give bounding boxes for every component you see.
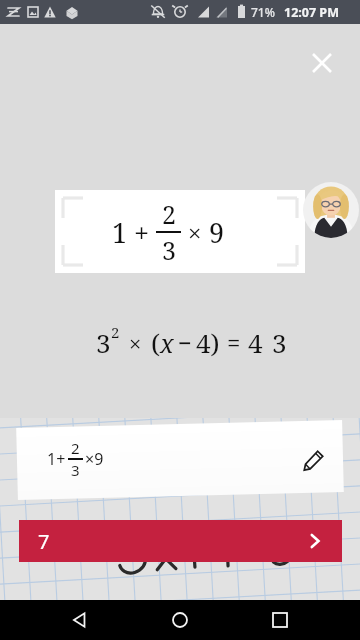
staticText: 2 [71, 438, 80, 458]
staticText: 1+ [47, 448, 66, 470]
staticText: 1 + [112, 214, 150, 251]
button[interactable]: 1 + [55, 190, 305, 273]
other: Next [300, 526, 330, 556]
staticText: 71% [251, 4, 275, 20]
button[interactable]: Recents [260, 600, 300, 640]
staticText: 4 [248, 325, 263, 360]
button[interactable]: Edit [297, 444, 329, 476]
staticText: − [178, 326, 192, 359]
button[interactable]: Close [302, 43, 342, 83]
staticText: 2 [162, 197, 176, 231]
button[interactable]: Back [60, 600, 100, 640]
button[interactable]: Tutor avatar [303, 182, 359, 238]
staticText: ×9 [85, 448, 104, 470]
staticText: 3 [71, 460, 80, 480]
staticText: ( [151, 325, 160, 360]
staticText: 4) [196, 325, 220, 360]
staticText: 9 [209, 214, 225, 251]
staticText: 3 [162, 233, 176, 267]
button[interactable]: 1+ [17, 424, 343, 496]
staticText: x [160, 326, 174, 360]
staticText: = [227, 326, 241, 359]
staticText: × [129, 328, 142, 358]
staticText: 2 [111, 322, 120, 342]
staticText: 3 [272, 325, 287, 360]
button[interactable]: Home [160, 600, 200, 640]
staticText: × [188, 216, 202, 249]
button[interactable]: 7 [19, 520, 342, 562]
staticText: 3 [96, 325, 111, 360]
staticText: 7 [38, 528, 50, 555]
staticText: 12:07 PM [284, 4, 339, 21]
